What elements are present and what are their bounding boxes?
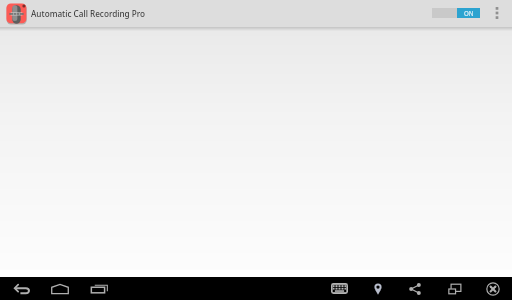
- other: Location: [374, 283, 382, 295]
- button[interactable]: Close: [482, 277, 504, 300]
- button[interactable]: Back: [11, 277, 33, 300]
- other: Recent apps: [91, 284, 108, 293]
- other: Home: [51, 284, 69, 294]
- other: Back: [14, 284, 30, 294]
- button[interactable]: Recent apps: [88, 277, 110, 300]
- button[interactable]: Home: [49, 277, 71, 300]
- button[interactable]: Location: [367, 277, 389, 300]
- other: Close: [486, 282, 500, 296]
- button[interactable]: More options: [494, 4, 500, 22]
- other: Share: [409, 283, 421, 295]
- other: Screenshot: [448, 283, 462, 295]
- button[interactable]: Share: [404, 277, 426, 300]
- button[interactable]: Recording on/off: [432, 8, 480, 18]
- button[interactable]: Automatic Call Recording Pro: [0, 0, 152, 27]
- other: Keyboard: [331, 283, 348, 294]
- button[interactable]: Keyboard: [328, 277, 350, 300]
- button[interactable]: Screenshot: [444, 277, 466, 300]
- staticText: Automatic Call Recording Pro: [31, 8, 146, 19]
- staticText: ON: [464, 9, 474, 17]
